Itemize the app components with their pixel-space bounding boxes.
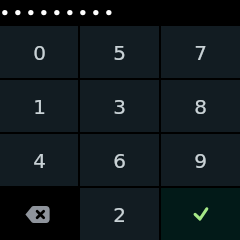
button[interactable]: Confirm bbox=[161, 188, 240, 240]
staticText: 4 bbox=[33, 149, 46, 172]
button[interactable]: 1 bbox=[0, 80, 78, 132]
button[interactable]: 2 bbox=[80, 188, 159, 240]
button[interactable]: 3 bbox=[80, 80, 159, 132]
button[interactable]: 6 bbox=[80, 134, 159, 186]
staticText: 6 bbox=[113, 149, 126, 172]
button[interactable]: 5 bbox=[80, 26, 159, 78]
button[interactable]: Backspace bbox=[0, 188, 78, 240]
staticText: 3 bbox=[113, 95, 126, 118]
staticText: 8 bbox=[194, 95, 207, 118]
button[interactable]: 4 bbox=[0, 134, 78, 186]
button[interactable]: 0 bbox=[0, 26, 78, 78]
button[interactable]: 8 bbox=[161, 80, 240, 132]
staticText: 9 bbox=[194, 149, 207, 172]
staticText: 1 bbox=[33, 95, 46, 118]
button[interactable]: 7 bbox=[161, 26, 240, 78]
staticText: 7 bbox=[194, 41, 207, 64]
staticText: 5 bbox=[113, 41, 126, 64]
staticText: 0 bbox=[33, 41, 46, 64]
staticText: 2 bbox=[113, 203, 126, 226]
button[interactable]: 9 bbox=[161, 134, 240, 186]
